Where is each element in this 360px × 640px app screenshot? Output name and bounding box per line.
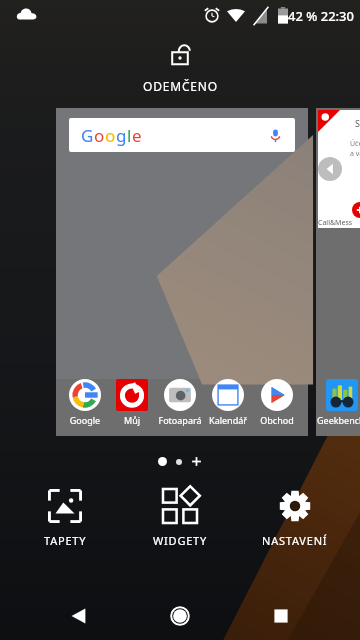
staticText: Můj Vodafo.. xyxy=(109,414,155,426)
button[interactable]: NASTAVENÍ xyxy=(245,483,345,554)
button[interactable]: St xyxy=(316,108,360,436)
button[interactable]: Kalendář xyxy=(205,379,251,426)
button[interactable]: Můj Vodafo.. xyxy=(109,379,155,426)
button[interactable]: Fotoaparát xyxy=(157,379,203,426)
staticText: l xyxy=(127,124,132,147)
other: Voice search xyxy=(268,128,283,143)
button[interactable]: Add page xyxy=(191,456,202,467)
staticText: Call&Mess xyxy=(318,218,353,228)
button[interactable]: G xyxy=(56,108,308,436)
staticText: e xyxy=(132,124,142,147)
button[interactable]: Obchod Play xyxy=(252,379,302,426)
staticText: Fotoaparát xyxy=(157,414,203,426)
button[interactable]: G xyxy=(69,118,295,152)
staticText: Úče xyxy=(350,139,360,149)
staticText: NASTAVENÍ xyxy=(262,533,328,548)
staticText: o xyxy=(105,124,116,147)
staticText: Google xyxy=(62,414,108,426)
button[interactable]: WIDGETY xyxy=(130,483,230,554)
button[interactable]: Home xyxy=(158,594,202,638)
button[interactable]: Back xyxy=(57,594,101,638)
staticText: Geekbench.. xyxy=(316,414,360,426)
staticText: St xyxy=(355,117,360,129)
staticText: a vá xyxy=(350,149,360,159)
staticText: g xyxy=(116,124,127,147)
staticText: 42 % 22:30 xyxy=(288,7,354,25)
button[interactable] xyxy=(176,459,182,465)
button[interactable]: TAPETY xyxy=(15,483,115,554)
button[interactable]: Google xyxy=(62,379,108,426)
staticText: G xyxy=(81,124,94,147)
staticText: Obchod Play xyxy=(252,414,302,426)
staticText: o xyxy=(94,124,105,147)
staticText: ODEMČENO xyxy=(143,78,218,94)
staticText: WIDGETY xyxy=(153,533,208,548)
staticText: Kalendář xyxy=(205,414,251,426)
button[interactable]: Recent apps xyxy=(259,594,303,638)
staticText: TAPETY xyxy=(44,533,87,548)
button[interactable] xyxy=(158,457,167,466)
